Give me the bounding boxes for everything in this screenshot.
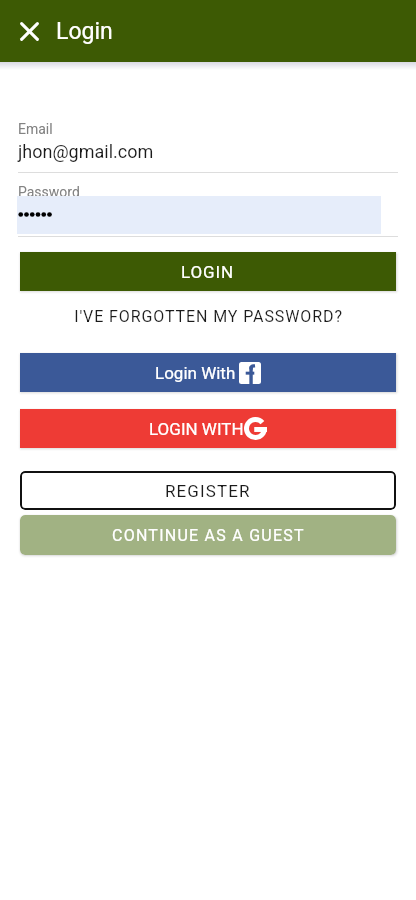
button[interactable]: CONTINUE AS A GUEST	[20, 515, 396, 555]
staticText: Email	[18, 121, 53, 137]
button[interactable]: Login With	[20, 353, 396, 392]
button[interactable]: LOGIN WITH	[20, 409, 396, 448]
button[interactable]: REGISTER	[20, 471, 396, 510]
staticText: Login	[56, 18, 113, 45]
staticText: I'VE FORGOTTEN MY PASSWORD?	[74, 307, 343, 326]
staticText: LOGIN WITH	[149, 419, 244, 439]
button[interactable]: Close	[13, 15, 45, 47]
staticText: CONTINUE AS A GUEST	[112, 526, 305, 545]
button[interactable]: LOGIN	[20, 252, 396, 291]
staticText: Login With	[155, 363, 236, 383]
staticText: REGISTER	[165, 481, 251, 501]
staticText: jhon@gmail.com	[18, 141, 154, 162]
button[interactable]: I'VE FORGOTTEN MY PASSWORD?	[0, 303, 416, 330]
staticText: Password	[18, 184, 80, 200]
staticText: LOGIN	[181, 262, 235, 282]
